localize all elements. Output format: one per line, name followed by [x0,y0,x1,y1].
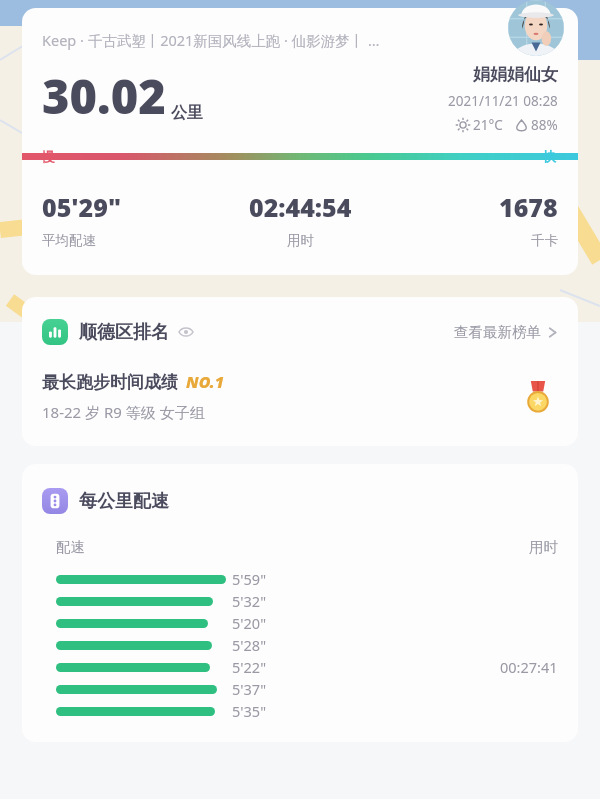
staticText: 5'22" [232,657,267,677]
staticText: 00:27:41 [500,657,558,677]
staticText: 查看最新榜单 [454,323,541,341]
staticText: 顺德区排名 [79,321,169,344]
staticText: 每公里配速 [79,490,169,513]
staticText: 88% [531,116,558,134]
staticText: 05'29" [42,190,122,224]
staticText: 02:44:54 [249,190,352,224]
other: Visibility [178,324,194,340]
staticText: 5'20" [232,613,267,633]
staticText: 娟娟娟仙女 [473,64,558,85]
staticText: 5'32" [232,591,267,611]
staticText: 最长跑步时间成绩 [42,372,178,393]
staticText: 5'35" [232,701,267,721]
button[interactable]: Profile avatar [508,0,564,56]
staticText: Keep · 千古武塑丨2021新国风线上跑 · 仙影游梦丨 … [42,30,380,50]
staticText: 1678 [499,190,558,224]
staticText: 平均配速 [42,232,96,249]
button[interactable]: 每公里配速 [42,488,169,514]
staticText: 公里 [171,103,203,123]
staticText: 21°C [473,116,503,134]
staticText: 快 [543,148,556,164]
staticText: 用时 [529,538,558,556]
staticText: 千卡 [531,232,558,249]
staticText: 5'37" [232,679,267,699]
staticText: 慢 [42,148,55,164]
button[interactable]: 查看最新榜单 [454,323,558,341]
staticText: 5'59" [232,569,267,589]
button[interactable]: 顺德区排名 [42,319,194,345]
staticText: 30.02 [42,64,166,128]
staticText: 2021/11/21 08:28 [448,92,558,110]
staticText: 配速 [56,538,85,556]
staticText: 5'28" [232,635,267,655]
staticText: 18-22 岁 R9 等级 女子组 [42,402,205,422]
staticText: NO.1 [186,371,224,393]
staticText: 用时 [287,232,314,249]
